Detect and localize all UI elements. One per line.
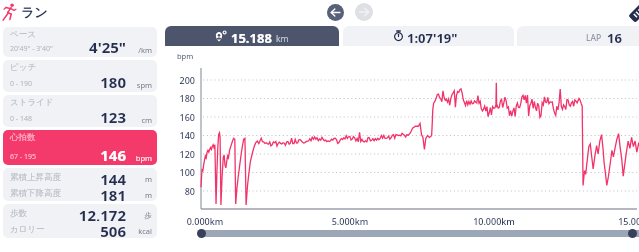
staticText: kcal: [122, 226, 152, 236]
button[interactable]: Previous lap: [327, 4, 344, 21]
staticText: m: [122, 174, 152, 184]
staticText: ラン: [21, 4, 48, 20]
staticText: 120: [168, 148, 195, 160]
staticText: 0 - 148: [10, 114, 32, 124]
staticText: cm: [122, 115, 152, 125]
button[interactable]: Range start: [197, 229, 206, 238]
staticText: 100: [168, 166, 195, 178]
staticText: 累積上昇高度: [10, 172, 61, 183]
staticText: m: [122, 190, 152, 200]
staticText: 4'25": [16, 37, 126, 57]
staticText: 10.000km: [462, 215, 526, 227]
staticText: カロリー: [10, 224, 45, 235]
staticText: 1:07'19": [407, 29, 458, 46]
staticText: 歩: [122, 211, 152, 220]
staticText: 12,172: [16, 205, 126, 221]
staticText: 歩数: [10, 208, 27, 219]
staticText: 180: [16, 72, 126, 92]
staticText: 15.000km: [607, 215, 639, 227]
button[interactable]: 累積上昇高度: [3, 168, 157, 201]
staticText: 160: [168, 111, 195, 123]
staticText: 181: [16, 185, 126, 201]
staticText: 0 - 190: [10, 79, 32, 89]
staticText: 506: [16, 221, 126, 237]
staticText: 67 - 195: [10, 152, 36, 162]
staticText: 200: [168, 74, 195, 86]
staticText: LAP: [586, 32, 602, 44]
button[interactable]: LAP: [517, 26, 639, 46]
staticText: 144: [16, 169, 126, 185]
staticText: 累積下降高度: [10, 188, 61, 199]
button[interactable]: ストライド: [3, 95, 157, 127]
button[interactable]: 1:07'19": [343, 26, 514, 46]
staticText: ペース: [10, 29, 36, 40]
button[interactable]: [201, 230, 639, 237]
staticText: 123: [16, 107, 126, 127]
staticText: 16: [607, 29, 622, 46]
button[interactable]: Next lap: [355, 3, 373, 21]
staticText: ストライド: [10, 97, 54, 108]
button[interactable]: ペース: [3, 27, 157, 57]
staticText: 15.188: [231, 29, 272, 46]
staticText: 146: [16, 145, 126, 165]
button[interactable]: ピッチ: [3, 60, 157, 92]
staticText: spm: [122, 80, 152, 90]
staticText: 180: [168, 92, 195, 104]
staticText: 80: [168, 185, 195, 197]
button[interactable]: 15.188: [165, 26, 339, 46]
staticText: bpm: [177, 51, 194, 61]
button[interactable]: 歩数: [3, 204, 157, 238]
staticText: 5.000km: [318, 215, 382, 227]
staticText: /km: [122, 45, 152, 55]
staticText: 0.000km: [173, 215, 237, 227]
button[interactable]: Range end: [628, 229, 637, 238]
button[interactable]: Share: [626, 0, 639, 24]
button[interactable]: 心拍数: [3, 130, 157, 165]
staticText: ピッチ: [10, 62, 37, 73]
staticText: 心拍数: [10, 132, 36, 143]
staticText: 20'49" - 3'40": [10, 44, 53, 54]
staticText: km: [276, 33, 289, 45]
staticText: 140: [168, 129, 195, 141]
staticText: bpm: [122, 153, 152, 163]
